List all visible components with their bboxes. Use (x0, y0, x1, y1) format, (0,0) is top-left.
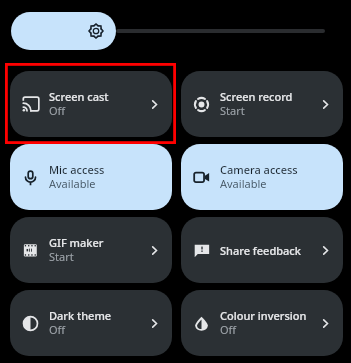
staticText: Off (49, 322, 66, 337)
button[interactable]: Screen record (181, 71, 343, 137)
staticText: GIF maker (49, 235, 104, 250)
staticText: Off (220, 322, 237, 337)
staticText: Start (220, 103, 245, 118)
staticText: Camera access (220, 162, 298, 177)
staticText: Mic access (49, 162, 105, 177)
button[interactable]: Dark theme (10, 290, 172, 356)
staticText: Start (49, 249, 74, 264)
staticText: Share feedback (220, 243, 301, 258)
staticText: Screen cast (49, 89, 109, 104)
staticText: Screen record (220, 89, 293, 104)
button[interactable]: Mic access (10, 144, 172, 210)
staticText: Dark theme (49, 308, 112, 323)
staticText: Off (49, 103, 66, 118)
button[interactable]: GIF maker (10, 217, 172, 283)
button[interactable]: Share feedback (181, 217, 343, 283)
button[interactable]: Camera access (181, 144, 343, 210)
staticText: Available (49, 176, 96, 191)
staticText: Colour inversion (220, 308, 307, 323)
staticText: Available (220, 176, 267, 191)
button[interactable]: Colour inversion (181, 290, 343, 356)
button[interactable]: Screen cast (10, 71, 172, 137)
button[interactable]: Brightness (11, 12, 116, 50)
